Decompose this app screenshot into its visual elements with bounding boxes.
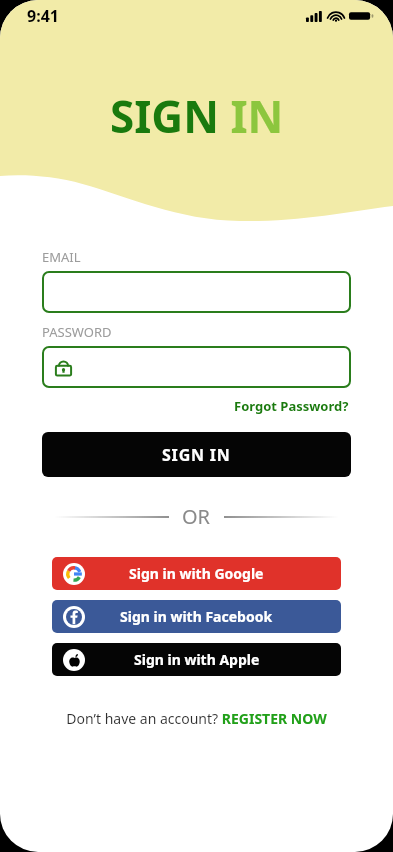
other: Password bbox=[54, 357, 73, 378]
button[interactable]: Sign in with Google bbox=[52, 557, 341, 590]
staticText: SIGN IN bbox=[162, 444, 231, 466]
staticText: SIGN IN bbox=[110, 86, 284, 146]
staticText: Sign in with Facebook bbox=[120, 607, 273, 626]
staticText: 9:41 bbox=[27, 5, 59, 27]
button[interactable]: SIGN IN bbox=[42, 432, 351, 477]
staticText: Sign in with Google bbox=[129, 564, 264, 583]
staticText: EMAIL bbox=[42, 248, 81, 266]
button[interactable]: Sign in with Apple bbox=[52, 643, 341, 676]
button[interactable]: Sign in with Facebook bbox=[52, 600, 341, 633]
staticText: Forgot Password? bbox=[234, 397, 349, 415]
staticText: Don’t have an account? REGISTER NOW bbox=[66, 709, 327, 728]
button[interactable]: Forgot Password? bbox=[232, 395, 351, 417]
staticText: PASSWORD bbox=[42, 323, 112, 341]
staticText: Sign in with Apple bbox=[134, 650, 260, 669]
button[interactable] bbox=[42, 271, 351, 313]
staticText: OR bbox=[182, 503, 211, 530]
button[interactable]: Password bbox=[42, 346, 351, 388]
button[interactable]: Don’t have an account? REGISTER NOW bbox=[62, 705, 331, 732]
